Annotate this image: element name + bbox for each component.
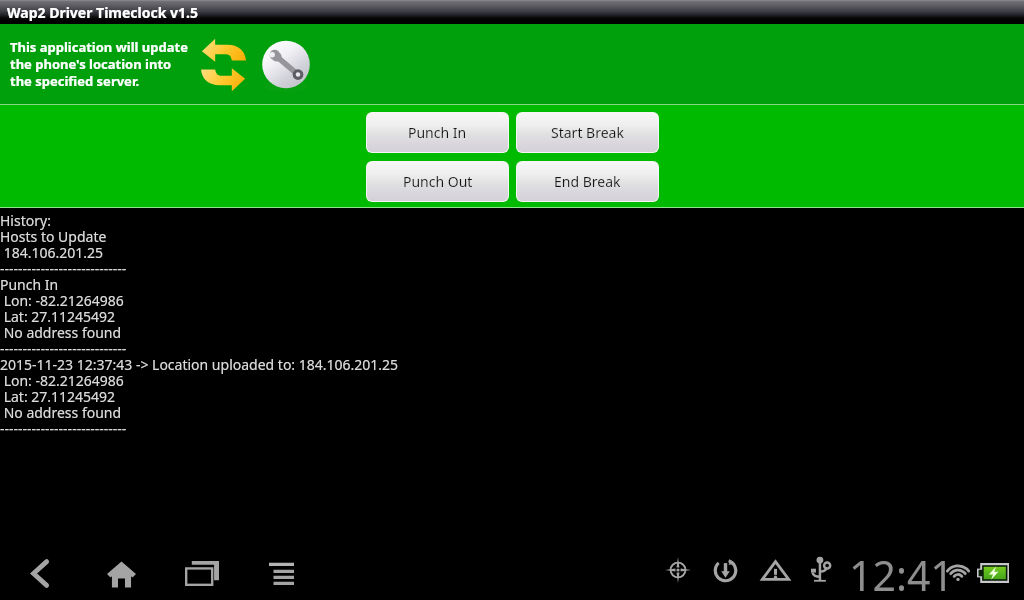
- other: Battery charging: [977, 563, 1009, 583]
- other: GPS location active: [665, 557, 691, 583]
- other: Downloading: [713, 558, 738, 583]
- staticText: This application will update the phone's…: [10, 39, 188, 90]
- button[interactable]: Home: [101, 553, 141, 593]
- staticText: Punch Out: [403, 172, 473, 191]
- staticText: Wap2 Driver Timeclock v1.5: [7, 3, 198, 22]
- button[interactable]: Sync: [196, 33, 250, 97]
- other: USB connected: [811, 557, 831, 584]
- button[interactable]: End Break: [516, 161, 659, 202]
- button[interactable]: Settings: [258, 37, 314, 93]
- other: Wi-Fi signal: [944, 557, 972, 585]
- button[interactable]: Recent apps: [182, 553, 222, 593]
- button[interactable]: Start Break: [516, 112, 659, 153]
- button[interactable]: Punch In: [366, 112, 509, 153]
- other: Warning: [759, 557, 792, 584]
- staticText: 12:41: [849, 547, 954, 600]
- button[interactable]: Back: [20, 553, 60, 593]
- staticText: Punch In: [408, 123, 467, 142]
- staticText: End Break: [554, 172, 621, 191]
- button[interactable]: Punch Out: [366, 161, 509, 202]
- button[interactable]: Menu: [261, 553, 301, 593]
- staticText: History: Hosts to Update 184.106.201.25 …: [0, 213, 399, 437]
- staticText: Start Break: [551, 123, 624, 142]
